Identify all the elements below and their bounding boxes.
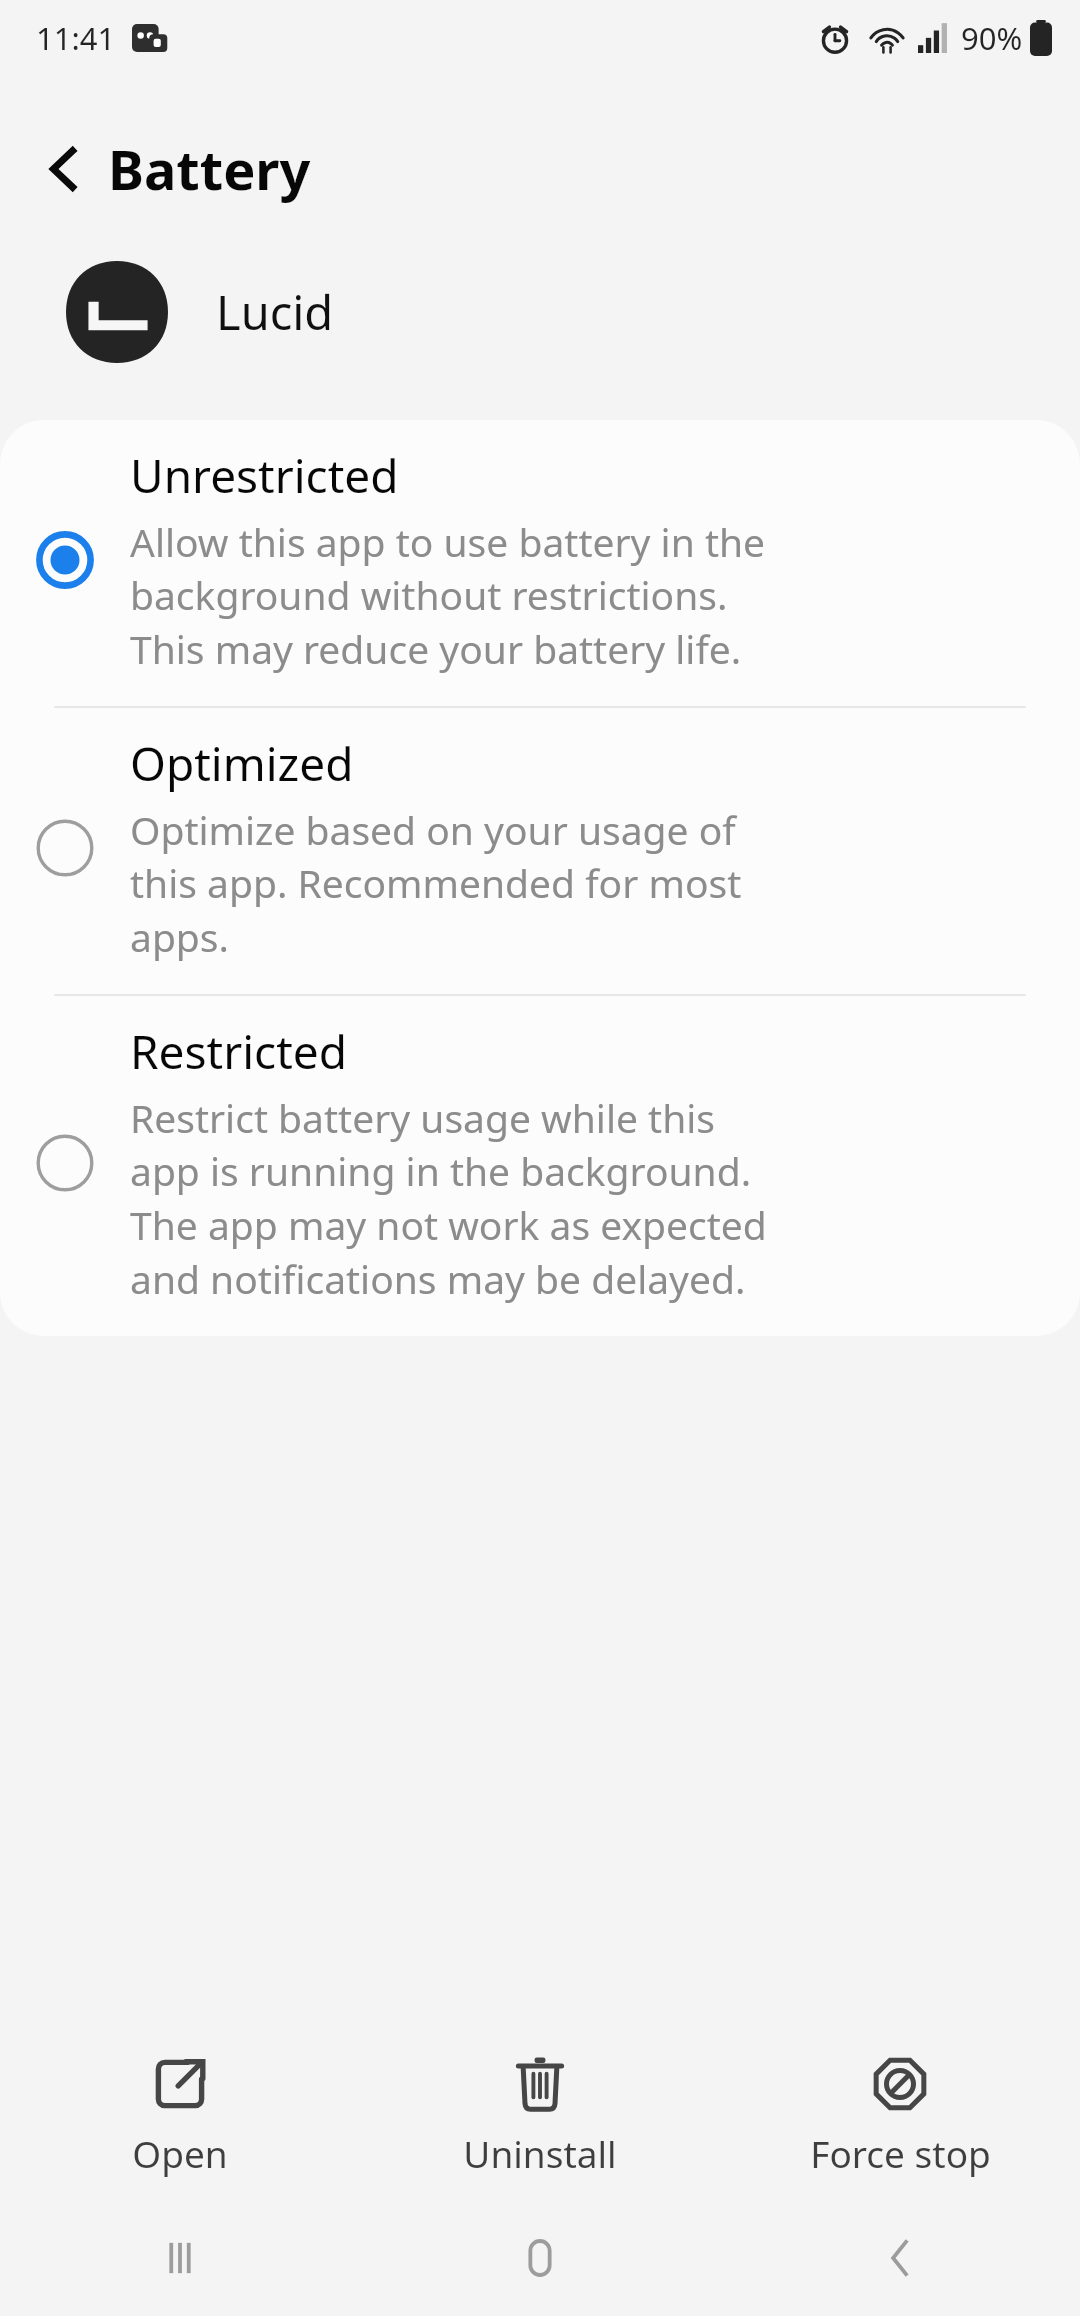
staticText: Lucid xyxy=(216,280,334,344)
staticText: 90% xyxy=(961,17,1023,59)
staticText: Force stop xyxy=(810,2128,991,2178)
button[interactable]: Back xyxy=(20,125,108,213)
staticText: Allow this app to use battery in the bac… xyxy=(130,515,766,676)
button[interactable]: Force stop xyxy=(720,2032,1080,2200)
staticText: Optimize based on your usage of this app… xyxy=(130,803,742,964)
button[interactable]: Optimized xyxy=(0,708,1080,994)
staticText: Optimized xyxy=(130,732,354,795)
button[interactable]: Recents xyxy=(0,2200,360,2316)
staticText: 11:41 xyxy=(36,17,116,59)
button[interactable]: Unrestricted xyxy=(0,420,1080,706)
staticText: Battery xyxy=(108,132,311,206)
button[interactable]: Home xyxy=(360,2200,720,2316)
staticText: Unrestricted xyxy=(130,444,399,507)
staticText: Restricted xyxy=(130,1020,347,1083)
button[interactable]: Restricted xyxy=(0,996,1080,1336)
button[interactable]: Open xyxy=(0,2032,360,2200)
staticText: Open xyxy=(132,2128,228,2178)
button[interactable]: Back xyxy=(720,2200,1080,2316)
staticText: Uninstall xyxy=(463,2128,617,2178)
staticText: Restrict battery usage while this app is… xyxy=(130,1091,767,1306)
button[interactable]: Uninstall xyxy=(360,2032,720,2200)
